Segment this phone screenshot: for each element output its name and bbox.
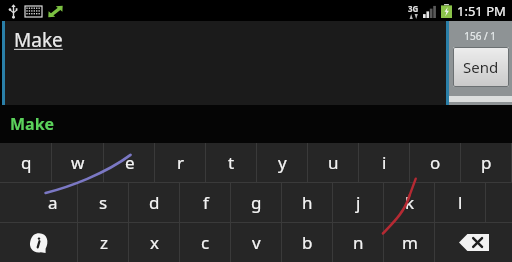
staticText: u (328, 151, 339, 174)
button[interactable]: h (282, 183, 333, 222)
staticText: p (481, 151, 492, 174)
staticText: r (177, 151, 185, 174)
button[interactable]: s (78, 183, 129, 222)
button[interactable]: d (129, 183, 180, 222)
button[interactable]: b (282, 223, 333, 262)
staticText: 3G (408, 3, 419, 14)
staticText: z (100, 231, 108, 254)
staticText: Make (10, 113, 55, 135)
button[interactable]: Make (10, 113, 55, 135)
button[interactable]: g (231, 183, 282, 222)
staticText: y (278, 151, 287, 174)
staticText: b (302, 231, 313, 254)
staticText: o (430, 151, 441, 174)
staticText: w (71, 151, 85, 174)
button[interactable]: u (308, 143, 359, 182)
button[interactable]: k (384, 183, 435, 222)
button[interactable]: n (333, 223, 384, 262)
button[interactable]: a (27, 183, 78, 222)
button[interactable]: l (435, 183, 486, 222)
button[interactable]: j (333, 183, 384, 222)
button[interactable]: Send (453, 47, 509, 87)
staticText: x (150, 231, 159, 254)
button[interactable]: v (231, 223, 282, 262)
button[interactable]: o (410, 143, 461, 182)
staticText: m (402, 231, 418, 254)
button[interactable]: t (206, 143, 257, 182)
button[interactable]: q (0, 143, 52, 182)
staticText: j (356, 191, 361, 214)
staticText: Send (463, 57, 499, 77)
button[interactable]: e (104, 143, 155, 182)
staticText: n (353, 231, 364, 254)
button[interactable]: Delete (435, 223, 512, 262)
staticText: d (149, 191, 160, 214)
staticText: q (21, 151, 32, 174)
staticText: a (48, 191, 58, 214)
staticText: s (99, 191, 108, 214)
staticText: v (252, 231, 261, 254)
staticText: c (201, 231, 210, 254)
staticText: t (228, 151, 235, 174)
staticText: g (251, 191, 262, 214)
button[interactable]: i (359, 143, 410, 182)
staticText: k (405, 191, 415, 214)
button[interactable]: w (52, 143, 104, 182)
button[interactable]: f (180, 183, 231, 222)
button[interactable]: p (461, 143, 512, 182)
staticText: e (125, 151, 135, 174)
staticText: 156 / 1 (464, 29, 496, 43)
button[interactable]: z (78, 223, 129, 262)
button[interactable]: c (180, 223, 231, 262)
button[interactable]: x (129, 223, 180, 262)
staticText: f (203, 191, 209, 214)
staticText: l (458, 191, 463, 214)
button[interactable]: Make (2, 21, 446, 105)
button[interactable]: y (257, 143, 308, 182)
staticText: i (382, 151, 387, 174)
button[interactable]: m (384, 223, 435, 262)
staticText: h (302, 191, 313, 214)
button[interactable]: Keyboard settings (0, 223, 77, 262)
staticText: Make (14, 27, 63, 53)
button[interactable]: r (155, 143, 206, 182)
staticText: 1:51 PM (457, 2, 506, 20)
